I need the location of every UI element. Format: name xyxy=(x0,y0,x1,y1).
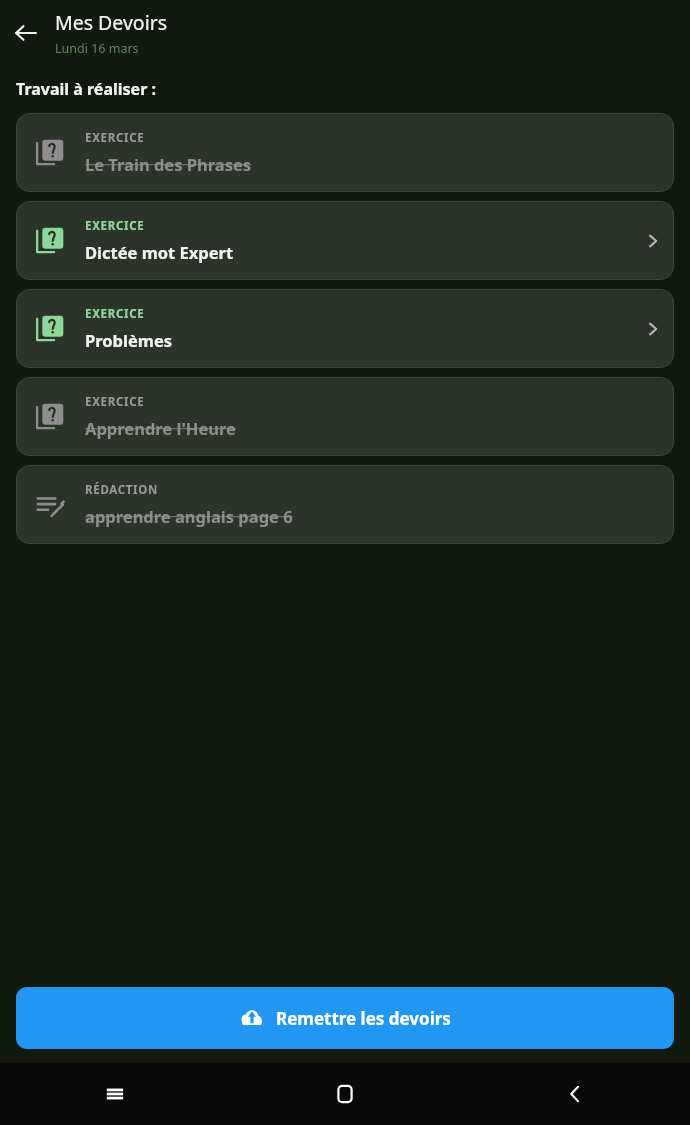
staticText: Apprendre l'Heure xyxy=(85,417,236,439)
staticText: Le Train des Phrases xyxy=(85,153,252,175)
staticText: EXERCICE xyxy=(85,218,145,234)
staticText: Lundi 16 mars xyxy=(55,40,139,57)
staticText: apprendre anglais page 6 xyxy=(85,505,293,527)
button[interactable]: Remettre les devoirs xyxy=(16,987,674,1049)
staticText: Remettre les devoirs xyxy=(276,1007,451,1030)
button[interactable]: EXERCICE xyxy=(16,377,674,456)
button[interactable]: Home xyxy=(230,1063,460,1125)
button[interactable]: RÉDACTION xyxy=(16,465,674,544)
button[interactable]: EXERCICE xyxy=(16,201,674,280)
staticText: RÉDACTION xyxy=(85,482,159,498)
staticText: Mes Devoirs xyxy=(55,9,168,36)
button[interactable]: Retour xyxy=(0,0,52,66)
button[interactable]: Recents xyxy=(0,1063,230,1125)
staticText: Problèmes xyxy=(85,329,173,351)
staticText: EXERCICE xyxy=(85,394,145,410)
staticText: EXERCICE xyxy=(85,130,145,146)
staticText: Travail à réaliser : xyxy=(16,78,156,100)
button[interactable]: EXERCICE xyxy=(16,289,674,368)
staticText: EXERCICE xyxy=(85,306,145,322)
button[interactable]: Back xyxy=(460,1063,690,1125)
staticText: Dictée mot Expert xyxy=(85,241,234,263)
button[interactable]: EXERCICE xyxy=(16,113,674,192)
